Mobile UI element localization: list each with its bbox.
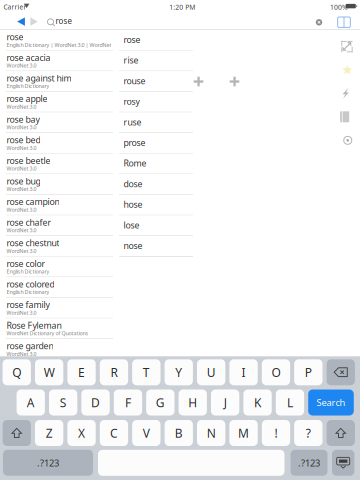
staticText: X [78, 425, 85, 441]
button[interactable]: rose beetle [0, 154, 117, 174]
staticText: rose [55, 15, 72, 26]
button[interactable]: rose bed [0, 133, 117, 154]
staticText: 100% [330, 2, 348, 12]
button[interactable]: rose family [0, 298, 117, 318]
button[interactable]: R [100, 359, 128, 385]
button[interactable]: Forward [27, 15, 41, 29]
button[interactable]: T [132, 359, 160, 385]
button[interactable]: Rose Fyleman [0, 318, 117, 339]
button[interactable]: A [17, 389, 45, 415]
staticText: Carrier [4, 2, 27, 11]
button[interactable]: rouse [119, 71, 195, 92]
button[interactable]: Delete [327, 359, 355, 385]
staticText: rose family [6, 299, 49, 311]
button[interactable]: K [243, 389, 272, 415]
button[interactable]: L [276, 389, 304, 415]
button[interactable]: Notebook [334, 105, 356, 128]
button[interactable]: rose apple [0, 92, 117, 112]
button[interactable]: Rome [119, 154, 195, 174]
button[interactable]: Favourite [336, 59, 358, 82]
staticText: WordNet 3.0 [6, 185, 36, 193]
button[interactable]: J [211, 389, 239, 415]
staticText: V [143, 425, 150, 441]
button[interactable]: Locate [337, 129, 359, 152]
button[interactable]: rose bay [0, 112, 117, 133]
button[interactable]: rose chafer [0, 215, 117, 236]
button[interactable]: hose [119, 195, 195, 215]
button[interactable]: rose color [0, 257, 117, 277]
button[interactable]: ruse [119, 112, 195, 133]
button[interactable]: M [229, 420, 258, 446]
staticText: lose [123, 219, 139, 231]
staticText: dose [123, 178, 142, 190]
button[interactable]: rose [119, 30, 195, 51]
staticText: .?123 [37, 456, 59, 469]
button[interactable]: Library [336, 14, 352, 30]
button[interactable]: rose acacia [0, 51, 117, 71]
staticText: E [78, 364, 85, 380]
button[interactable]: Add note [226, 73, 242, 89]
staticText: P [305, 364, 312, 380]
button[interactable]: Z [35, 420, 63, 446]
button[interactable]: ! [262, 420, 290, 446]
button[interactable]: Clear search [312, 16, 325, 29]
button[interactable]: W [35, 359, 63, 385]
button[interactable]: Flashcards [334, 82, 356, 105]
button[interactable]: nose [119, 236, 195, 257]
button[interactable]: O [262, 359, 290, 385]
button[interactable]: Search [308, 389, 354, 415]
button[interactable]: C [100, 420, 128, 446]
button[interactable]: .?123 [290, 450, 327, 476]
button[interactable]: P [294, 359, 322, 385]
button[interactable]: Expand [336, 35, 358, 58]
button[interactable]: rose [0, 30, 117, 51]
button[interactable]: rose campion [0, 195, 117, 215]
staticText: rose garden [6, 340, 53, 352]
button[interactable]: rose bug [0, 174, 117, 195]
button[interactable]: dose [119, 174, 195, 195]
staticText: WordNet 3.0 [6, 144, 36, 151]
button[interactable]: U [197, 359, 225, 385]
button[interactable]: H [179, 389, 207, 415]
button[interactable]: B [165, 420, 193, 446]
button[interactable]: Add word [190, 73, 206, 89]
button[interactable]: rise [119, 51, 195, 71]
staticText: rose against him [6, 72, 71, 84]
button[interactable]: D [81, 389, 110, 415]
button[interactable]: Back [14, 15, 28, 29]
button[interactable]: X [67, 420, 96, 446]
button[interactable]: S [49, 389, 77, 415]
button[interactable]: lose [119, 215, 195, 236]
button[interactable]: .?123 [3, 450, 93, 476]
button[interactable]: G [146, 389, 174, 415]
button[interactable]: rose colored [0, 277, 117, 298]
staticText: K [254, 394, 261, 411]
button[interactable]: Shift [3, 420, 31, 446]
button[interactable]: E [67, 359, 96, 385]
staticText: rose apple [6, 93, 47, 105]
button[interactable]: ? [294, 420, 322, 446]
button[interactable]: Shift [327, 420, 355, 446]
staticText: rose [6, 31, 23, 43]
button[interactable]: Q [3, 359, 31, 385]
staticText: Z [46, 425, 53, 441]
button[interactable]: rose chestnut [0, 236, 117, 257]
button[interactable]: V [132, 420, 160, 446]
button[interactable]: prose [119, 133, 195, 154]
button[interactable]: rosy [119, 92, 195, 112]
button[interactable]: Y [165, 359, 193, 385]
button[interactable]: rose garden [0, 339, 117, 360]
button[interactable]: I [229, 359, 258, 385]
button[interactable]: Hide keyboard [332, 450, 354, 476]
button[interactable]: rose against him [0, 71, 117, 92]
staticText: Search [316, 396, 345, 409]
staticText: Rome [123, 157, 146, 169]
staticText: D [91, 394, 100, 411]
button[interactable]: F [114, 389, 142, 415]
staticText: ? [306, 425, 311, 441]
staticText: M [238, 425, 249, 441]
staticText: W [44, 364, 55, 380]
button[interactable]: N [197, 420, 225, 446]
